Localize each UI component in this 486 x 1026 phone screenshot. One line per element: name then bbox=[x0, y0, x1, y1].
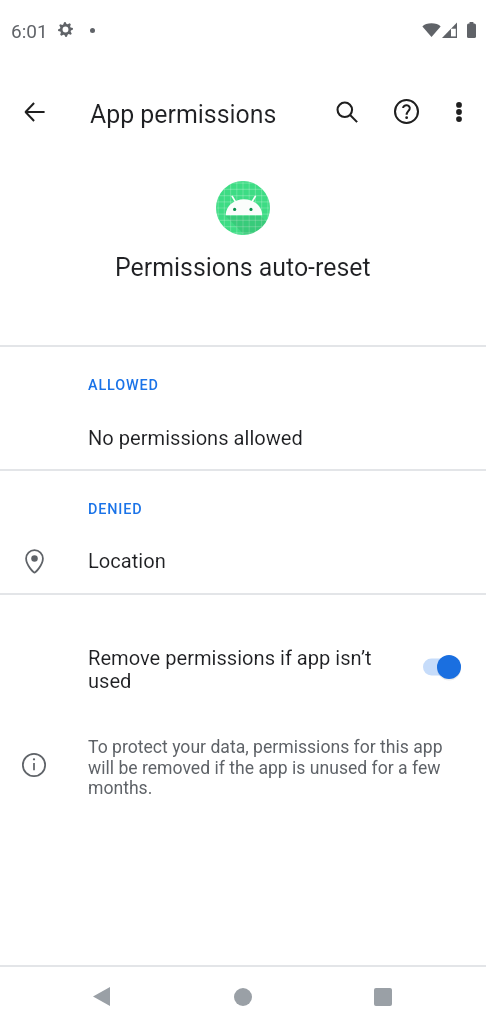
button[interactable]: More options bbox=[434, 87, 483, 136]
staticText: ALLOWED bbox=[88, 377, 159, 394]
staticText: Remove permissions if app isn’t used bbox=[88, 646, 378, 693]
staticText: Permissions auto-reset bbox=[115, 253, 371, 282]
button[interactable]: Help bbox=[382, 87, 431, 136]
button[interactable]: Navigate up bbox=[10, 87, 59, 136]
button[interactable]: Search bbox=[322, 87, 371, 136]
staticText: App permissions bbox=[90, 100, 277, 129]
staticText: No permissions allowed bbox=[88, 426, 303, 450]
staticText: 6:01 bbox=[11, 20, 48, 42]
button[interactable]: Back bbox=[72, 967, 131, 1026]
button[interactable]: Home bbox=[213, 967, 272, 1026]
button[interactable]: No permissions allowed bbox=[0, 409, 486, 467]
staticText: DENIED bbox=[88, 501, 143, 518]
button[interactable]: Location bbox=[0, 532, 486, 590]
staticText: To protect your data, permissions for th… bbox=[88, 737, 460, 799]
staticText: Location bbox=[88, 549, 166, 573]
button[interactable]: Remove permissions if app isn’t used bbox=[0, 595, 486, 725]
button[interactable]: Recent apps bbox=[353, 967, 412, 1026]
